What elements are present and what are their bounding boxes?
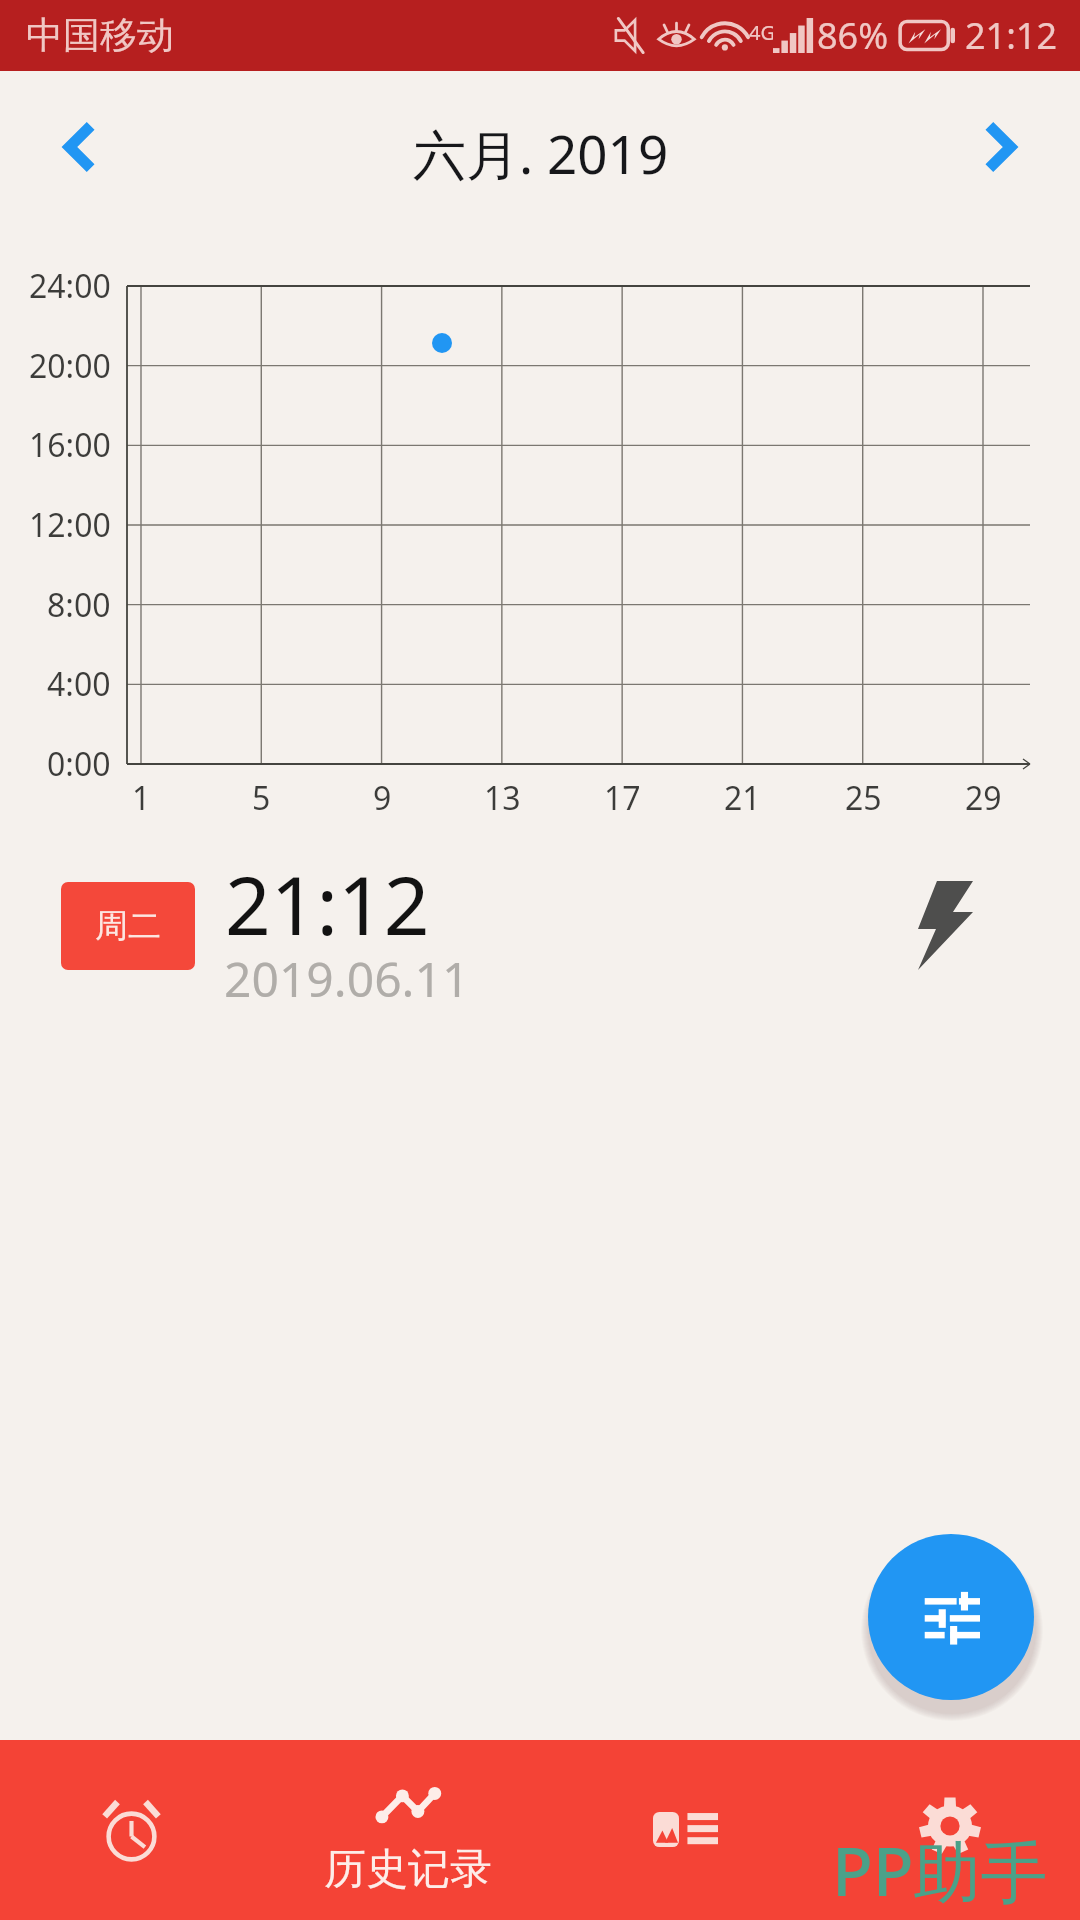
staticText: 24:00 [29,264,111,308]
button[interactable]: Gallery [575,1769,795,1889]
button[interactable]: 历史记录 [297,1748,519,1910]
button[interactable]: Flash [890,866,1001,985]
button[interactable]: Next month [954,101,1046,193]
staticText: 0:00 [47,742,111,786]
staticText: 13 [484,776,521,820]
staticText: 12:00 [29,503,111,547]
staticText: 5 [252,776,271,820]
button[interactable]: Filter settings [868,1534,1034,1700]
button[interactable]: Previous month [34,101,126,193]
staticText: 1 [132,776,151,820]
staticText: 周二 [95,905,161,947]
staticText: 9 [373,776,392,820]
staticText: 21:12 [225,849,430,958]
staticText: 29 [965,776,1002,820]
staticText: 16:00 [29,423,111,467]
staticText: 21:12 [965,11,1058,60]
staticText: PP助手 [832,1824,1048,1916]
staticText: 2019.06.11 [224,946,470,1011]
staticText: 4:00 [47,662,111,706]
staticText: 六月. 2019 [413,117,669,189]
staticText: 20:00 [29,344,111,388]
staticText: 中国移动 [26,12,174,59]
staticText: 4G [749,19,773,46]
staticText: 86% [817,11,889,60]
staticText: 25 [845,776,882,820]
button[interactable]: 周二 [0,850,1080,1040]
button[interactable]: Alarms [21,1769,241,1889]
staticText: 21 [724,776,761,820]
staticText: 历史记录 [324,1843,492,1896]
staticText: 8:00 [47,583,111,627]
staticText: 17 [604,776,641,820]
button[interactable]: Settings [840,1766,1060,1886]
